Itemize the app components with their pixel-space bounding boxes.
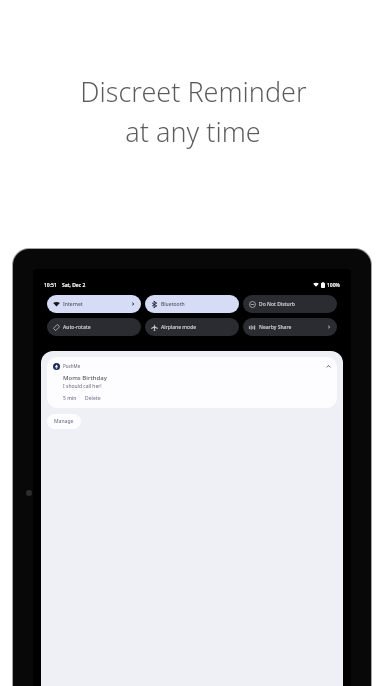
button[interactable]: Internet (47, 295, 141, 313)
button[interactable]: Delete (85, 395, 101, 402)
staticText: Do Not Disturb (259, 301, 295, 308)
button[interactable]: Bluetooth (145, 295, 239, 313)
button[interactable]: Manage (47, 414, 81, 429)
button[interactable]: Auto-rotate (47, 318, 141, 336)
staticText: PushMe (63, 363, 81, 369)
staticText: Nearby Share (259, 324, 292, 331)
staticText: Bluetooth (161, 301, 185, 308)
staticText: Delete (85, 395, 101, 402)
staticText: I should call her! (63, 383, 102, 390)
button[interactable]: Nearby Share (243, 318, 337, 336)
button[interactable]: Airplane mode (145, 318, 239, 336)
staticText: Moms Birthday (63, 374, 107, 382)
staticText: Internet (63, 301, 83, 308)
staticText: Manage (54, 418, 74, 425)
button[interactable]: 5 min (63, 395, 77, 402)
staticText: 10:51 (44, 282, 57, 289)
staticText: Sat, Dec 2 (62, 282, 86, 289)
staticText: Discreet Reminder (80, 73, 307, 110)
button[interactable]: PushMe (47, 357, 337, 408)
button[interactable]: Do Not Disturb (243, 295, 337, 313)
staticText: Airplane mode (161, 324, 197, 331)
staticText: at any time (125, 113, 261, 150)
staticText: 5 min (63, 395, 77, 402)
staticText: Auto-rotate (63, 324, 91, 331)
button[interactable]: Collapse notification (324, 362, 332, 370)
staticText: 100% (327, 282, 340, 289)
